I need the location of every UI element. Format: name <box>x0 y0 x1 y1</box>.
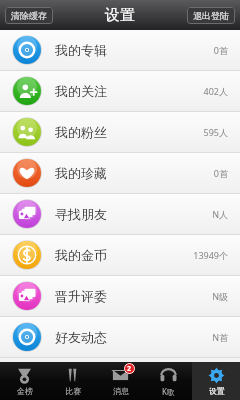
staticText: 消息 <box>113 386 129 396</box>
staticText: 好友动态 <box>55 329 107 345</box>
staticText: 0首 <box>213 44 228 56</box>
button[interactable]: 退出登陆 <box>187 7 235 24</box>
button[interactable]: 设置 <box>192 362 240 400</box>
staticText: 我的粉丝 <box>55 124 107 140</box>
staticText: 晋升评委 <box>55 288 107 304</box>
staticText: 金榜 <box>17 386 33 396</box>
button[interactable]: 2 <box>96 362 144 400</box>
staticText: N人 <box>212 208 228 220</box>
staticText: 595人 <box>203 126 228 138</box>
staticText: 2 <box>127 364 132 374</box>
staticText: N首 <box>212 331 228 343</box>
staticText: K歌 <box>162 386 175 397</box>
staticText: 比赛 <box>65 386 81 396</box>
staticText: 我的关注 <box>55 83 107 99</box>
button[interactable]: 比赛 <box>48 362 96 400</box>
button[interactable]: 好友动态 <box>0 317 240 357</box>
staticText: 设置 <box>105 6 135 25</box>
staticText: 我的珍藏 <box>55 165 107 181</box>
staticText: 402人 <box>203 85 228 97</box>
button[interactable]: 晋升评委 <box>0 276 240 316</box>
staticText: 清除缓存 <box>11 10 47 21</box>
button[interactable]: 金榜 <box>0 362 48 400</box>
button[interactable]: 我的珍藏 <box>0 153 240 193</box>
staticText: 我的金币 <box>55 247 107 263</box>
staticText: N级 <box>212 290 228 302</box>
staticText: 0首 <box>213 167 228 179</box>
staticText: 退出登陆 <box>193 10 229 21</box>
button[interactable]: 我的关注 <box>0 71 240 111</box>
button[interactable]: 我的金币 <box>0 235 240 275</box>
staticText: 13949个 <box>193 249 228 261</box>
button[interactable]: 我的粉丝 <box>0 112 240 152</box>
staticText: 设置 <box>209 386 225 396</box>
button[interactable]: 我的专辑 <box>0 30 240 70</box>
staticText: 我的专辑 <box>55 42 107 58</box>
button[interactable]: 清除缓存 <box>5 7 53 24</box>
staticText: 寻找朋友 <box>55 206 107 222</box>
button[interactable]: 寻找朋友 <box>0 194 240 234</box>
button[interactable]: K歌 <box>144 362 192 400</box>
